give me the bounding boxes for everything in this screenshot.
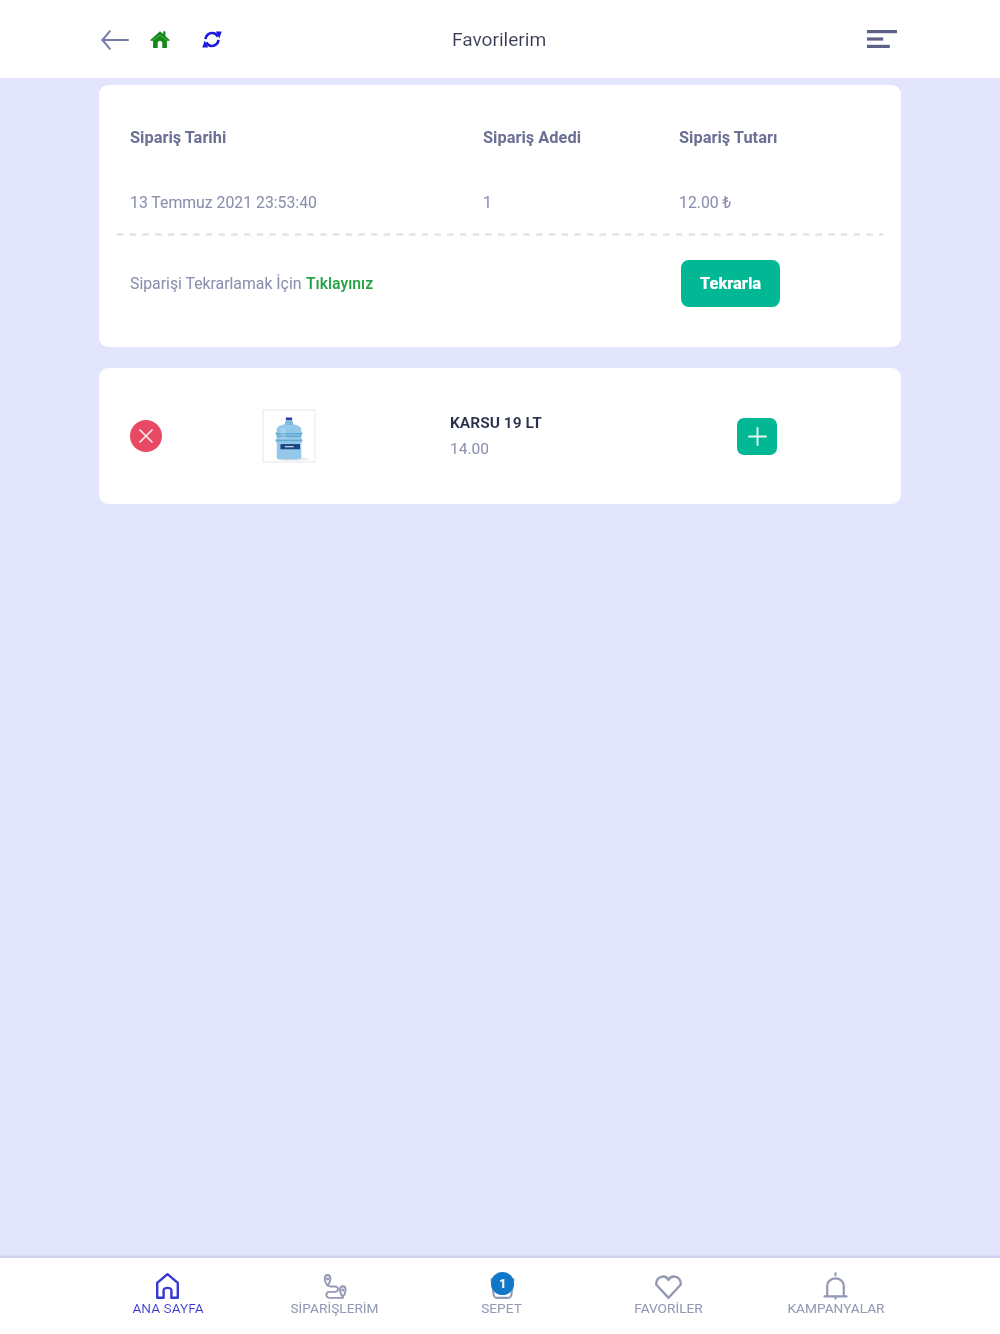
staticText: KAMPANYALAR bbox=[787, 1300, 885, 1316]
staticText: ANA SAYFA bbox=[132, 1300, 204, 1316]
staticText: Tıklayınız bbox=[306, 274, 374, 293]
staticText: FAVORİLER bbox=[634, 1300, 703, 1316]
button[interactable]: Menu bbox=[860, 17, 904, 61]
staticText: Sipariş Tarihi bbox=[130, 128, 483, 147]
button[interactable]: Back bbox=[92, 17, 137, 62]
button[interactable]: KAMPANYALAR bbox=[752, 1258, 919, 1334]
button[interactable]: Add bbox=[737, 418, 777, 455]
staticText: 1 bbox=[499, 1276, 507, 1291]
staticText: SEPET bbox=[481, 1300, 522, 1316]
staticText: 14.00 bbox=[450, 440, 489, 458]
staticText: SİPARİŞLERİM bbox=[290, 1300, 379, 1316]
button[interactable]: Refresh bbox=[190, 17, 234, 61]
button[interactable]: 1 bbox=[418, 1258, 585, 1334]
staticText: Sipariş Adedi bbox=[483, 128, 679, 147]
button[interactable]: FAVORİLER bbox=[585, 1258, 752, 1334]
button[interactable]: SİPARİŞLERİM bbox=[251, 1258, 418, 1334]
staticText: 1 bbox=[483, 193, 679, 212]
button[interactable]: Home bbox=[138, 17, 182, 61]
staticText: Tekrarla bbox=[700, 274, 762, 293]
button[interactable]: Remove bbox=[130, 420, 162, 452]
staticText: Siparişi Tekrarlamak İçin bbox=[130, 274, 306, 293]
staticText: KARSU 19 LT bbox=[450, 414, 542, 432]
staticText: 12.00 ₺ bbox=[679, 193, 732, 212]
button[interactable]: ANA SAYFA bbox=[84, 1258, 251, 1334]
button[interactable]: Tekrarla bbox=[681, 260, 780, 307]
staticText: 13 Temmuz 2021 23:53:40 bbox=[130, 193, 483, 212]
button[interactable]: Siparişi Tekrarlamak İçin bbox=[130, 274, 374, 293]
staticText: Sipariş Tutarı bbox=[679, 128, 778, 147]
staticText: Favorilerim bbox=[452, 28, 547, 50]
